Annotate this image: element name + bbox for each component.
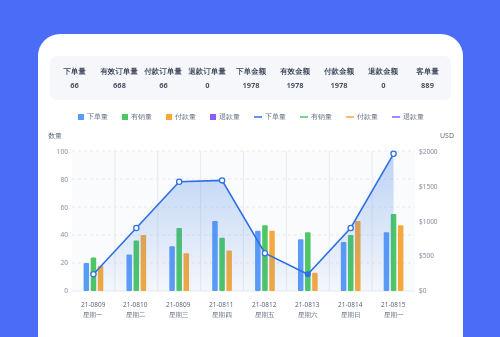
staticText: 退款量 — [403, 112, 424, 121]
staticText: $0 — [419, 286, 427, 295]
button[interactable]: 21-0811 — [200, 300, 243, 319]
staticText: 退款金额 — [368, 67, 398, 76]
staticText: 100 — [56, 147, 68, 156]
staticText: $500 — [419, 251, 434, 260]
staticText: 有销量 — [311, 112, 332, 121]
staticText: 40 — [60, 230, 68, 239]
button[interactable]: 付款量 — [159, 112, 203, 121]
staticText: 星期二 — [126, 311, 146, 319]
staticText: 星期五 — [255, 311, 275, 319]
staticText: 客单量 — [416, 67, 439, 76]
staticText: 0 — [205, 80, 210, 90]
staticText: 付款量 — [175, 112, 196, 121]
button[interactable]: 退款量 — [203, 112, 247, 121]
staticText: $2000 — [419, 147, 438, 156]
staticText: 21-0812 — [252, 300, 277, 309]
button[interactable]: 有销量 — [115, 112, 159, 121]
staticText: 付款订单量 — [144, 67, 182, 76]
staticText: 下单金额 — [236, 67, 266, 76]
staticText: 退款量 — [219, 112, 240, 121]
staticText: 星期四 — [212, 311, 232, 319]
staticText: 66 — [70, 80, 79, 90]
button[interactable]: 21-0809 — [72, 300, 114, 319]
staticText: 889 — [421, 80, 434, 90]
staticText: 21-0809 — [166, 300, 191, 309]
staticText: 60 — [60, 203, 68, 212]
staticText: 有效金额 — [280, 67, 310, 76]
button[interactable]: 下单量 — [71, 112, 115, 121]
staticText: 21-0810 — [123, 300, 148, 309]
staticText: 退款订单量 — [188, 67, 226, 76]
staticText: 1978 — [330, 80, 348, 90]
button[interactable]: 21-0815 — [372, 300, 415, 319]
staticText: 21-0813 — [295, 300, 320, 309]
staticText: 数量 — [48, 131, 62, 140]
staticText: 付款量 — [357, 112, 378, 121]
staticText: 星期一 — [83, 311, 103, 319]
staticText: 星期六 — [298, 311, 318, 319]
staticText: $1500 — [419, 182, 438, 191]
staticText: 20 — [60, 258, 68, 267]
staticText: 星期三 — [169, 311, 189, 319]
button[interactable]: 付款量 — [339, 112, 385, 121]
staticText: 星期日 — [341, 311, 361, 319]
button[interactable]: 21-0810 — [114, 300, 157, 319]
staticText: 下单量 — [63, 67, 86, 76]
staticText: 有效订单量 — [100, 67, 138, 76]
staticText: 66 — [159, 80, 168, 90]
staticText: 80 — [60, 175, 68, 184]
staticText: 21-0809 — [81, 300, 106, 309]
staticText: $1000 — [419, 217, 438, 226]
staticText: 下单量 — [265, 112, 286, 121]
button[interactable]: 退款量 — [385, 112, 431, 121]
staticText: 1978 — [286, 80, 304, 90]
staticText: USD — [440, 131, 455, 141]
staticText: 星期一 — [384, 311, 404, 319]
staticText: 下单量 — [87, 112, 108, 121]
button[interactable]: 下单量 — [247, 112, 293, 121]
button[interactable]: 21-0809 — [157, 300, 200, 319]
staticText: 0 — [381, 80, 386, 90]
staticText: 1978 — [242, 80, 260, 90]
staticText: 有销量 — [131, 112, 152, 121]
button[interactable]: 21-0813 — [286, 300, 329, 319]
staticText: 21-0815 — [381, 300, 406, 309]
staticText: 付款金额 — [324, 67, 354, 76]
button[interactable]: 有销量 — [293, 112, 339, 121]
button[interactable]: 下单量 — [50, 56, 451, 100]
button[interactable]: 21-0814 — [329, 300, 372, 319]
staticText: 21-0814 — [338, 300, 363, 309]
staticText: 0 — [64, 286, 68, 295]
staticText: 21-0811 — [209, 300, 234, 309]
staticText: 668 — [113, 80, 126, 90]
button[interactable]: 21-0812 — [243, 300, 286, 319]
